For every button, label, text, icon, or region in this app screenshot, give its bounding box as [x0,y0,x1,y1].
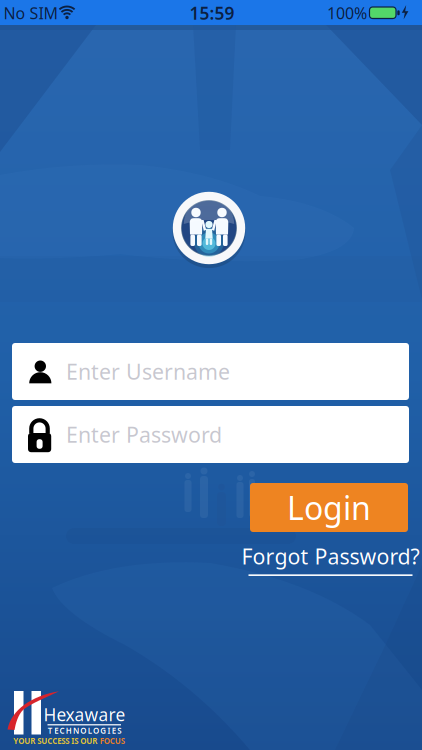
button[interactable]: Login [250,483,408,532]
button[interactable]: Enter Password [12,406,409,463]
staticText: TECHNOLOGIES [48,725,121,736]
staticText: 15:59 [189,1,234,24]
button[interactable]: Forgot Password? [241,542,419,576]
staticText: Enter Password [66,420,222,449]
staticText: Enter Username [66,357,230,386]
button[interactable]: Enter Username [12,343,409,400]
staticText: YOUR SUCCESS IS OUR [13,736,97,746]
staticText: 100% [327,2,367,24]
staticText: Hexaware [43,703,125,726]
staticText: FOCUS [100,736,125,746]
staticText: Login [287,486,371,529]
staticText: No SIM [3,2,58,24]
staticText: Forgot Password? [241,542,419,570]
